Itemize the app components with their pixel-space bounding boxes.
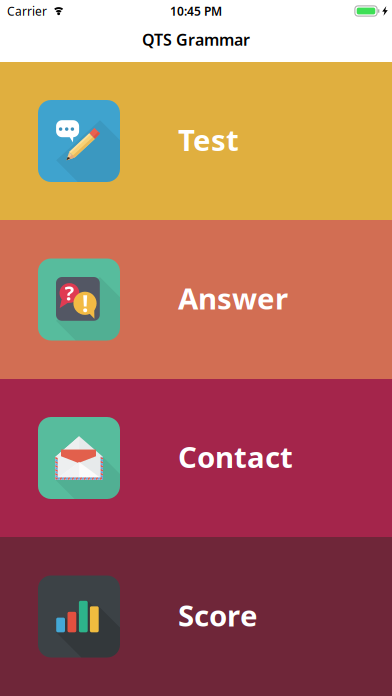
button[interactable]: Score xyxy=(0,537,392,696)
staticText: Test xyxy=(178,120,239,159)
button[interactable]: Test xyxy=(0,62,392,220)
staticText: 10:45 PM xyxy=(170,3,222,19)
button[interactable]: ? xyxy=(0,220,392,379)
button[interactable]: Contact xyxy=(0,379,392,537)
staticText: QTS Grammar xyxy=(142,29,250,50)
staticText: Score xyxy=(178,595,258,634)
staticText: Contact xyxy=(178,437,293,476)
staticText: ? xyxy=(64,279,74,306)
staticText: Answer xyxy=(178,278,288,317)
staticText: Carrier xyxy=(7,3,47,19)
staticText: ! xyxy=(82,288,88,318)
